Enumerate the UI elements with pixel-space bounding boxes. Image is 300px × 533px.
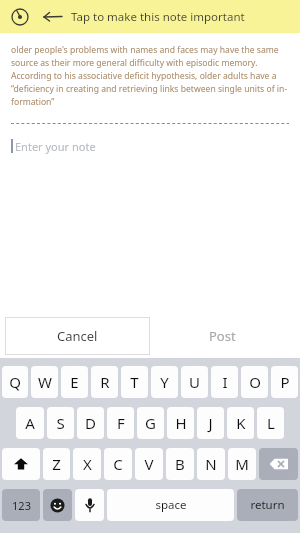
staticText: return xyxy=(250,497,285,513)
staticText: U xyxy=(189,372,200,392)
staticText: T xyxy=(130,372,139,392)
staticText: F xyxy=(117,413,125,433)
button[interactable]: M xyxy=(228,448,256,480)
button[interactable]: Shift xyxy=(2,448,40,480)
staticText: S xyxy=(56,413,65,433)
staticText: space xyxy=(155,497,187,513)
button[interactable]: S xyxy=(47,407,74,439)
staticText: L xyxy=(267,413,275,433)
staticText: Q xyxy=(9,372,21,392)
staticText: K xyxy=(236,413,246,433)
button[interactable]: Enter your note xyxy=(11,136,289,156)
button[interactable]: N xyxy=(197,448,225,480)
staticText: Cancel xyxy=(57,327,98,345)
button[interactable]: F xyxy=(107,407,134,439)
staticText: I xyxy=(222,372,228,392)
staticText: Enter your note xyxy=(15,139,96,154)
button[interactable]: A xyxy=(16,407,44,439)
staticText: N xyxy=(205,454,217,474)
staticText: Z xyxy=(52,454,61,474)
button[interactable]: T xyxy=(121,366,148,398)
button[interactable]: O xyxy=(241,366,268,398)
button[interactable]: Y xyxy=(151,366,178,398)
button[interactable]: return xyxy=(237,489,298,521)
button[interactable]: V xyxy=(135,448,163,480)
button[interactable]: D xyxy=(77,407,104,439)
button[interactable]: U xyxy=(181,366,208,398)
staticText: W xyxy=(38,372,52,392)
staticText: V xyxy=(144,454,154,474)
staticText: E xyxy=(70,372,79,392)
button[interactable]: Z xyxy=(43,448,70,480)
staticText: C xyxy=(113,454,123,474)
button[interactable]: H xyxy=(167,407,194,439)
button[interactable]: X xyxy=(73,448,101,480)
button[interactable]: C xyxy=(104,448,132,480)
staticText: Y xyxy=(160,372,169,392)
button[interactable]: J xyxy=(197,407,224,439)
staticText: O xyxy=(249,372,261,392)
staticText: Tap to make this note important xyxy=(71,9,245,25)
staticText: G xyxy=(145,413,156,433)
button[interactable]: Back xyxy=(41,5,65,29)
staticText: R xyxy=(100,372,110,392)
staticText: A xyxy=(25,413,35,433)
button[interactable]: L xyxy=(257,407,284,439)
staticText: J xyxy=(208,413,213,433)
button[interactable]: Emoji xyxy=(43,489,72,521)
staticText: Post xyxy=(209,327,236,345)
button[interactable]: B xyxy=(166,448,194,480)
button[interactable]: Q xyxy=(2,366,28,398)
button[interactable]: Cancel xyxy=(5,317,150,355)
button[interactable]: P xyxy=(271,366,298,398)
staticText: B xyxy=(175,454,185,474)
button[interactable]: K xyxy=(227,407,254,439)
button[interactable]: Backspace xyxy=(259,448,298,480)
button[interactable]: Post xyxy=(150,317,295,355)
button[interactable]: I xyxy=(211,366,238,398)
button[interactable]: R xyxy=(91,366,118,398)
staticText: 123 xyxy=(12,498,31,513)
button[interactable]: G xyxy=(137,407,164,439)
button[interactable]: space xyxy=(107,489,234,521)
staticText: X xyxy=(83,454,92,474)
staticText: D xyxy=(85,413,96,433)
staticText: older people's problems with names and f… xyxy=(11,44,289,108)
staticText: H xyxy=(175,413,187,433)
button[interactable]: Mark important xyxy=(9,6,31,28)
button[interactable]: E xyxy=(61,366,88,398)
button[interactable]: W xyxy=(31,366,58,398)
staticText: P xyxy=(280,372,290,392)
button[interactable]: Dictate xyxy=(75,489,104,521)
button[interactable]: 123 xyxy=(2,489,40,521)
staticText: M xyxy=(235,454,249,474)
